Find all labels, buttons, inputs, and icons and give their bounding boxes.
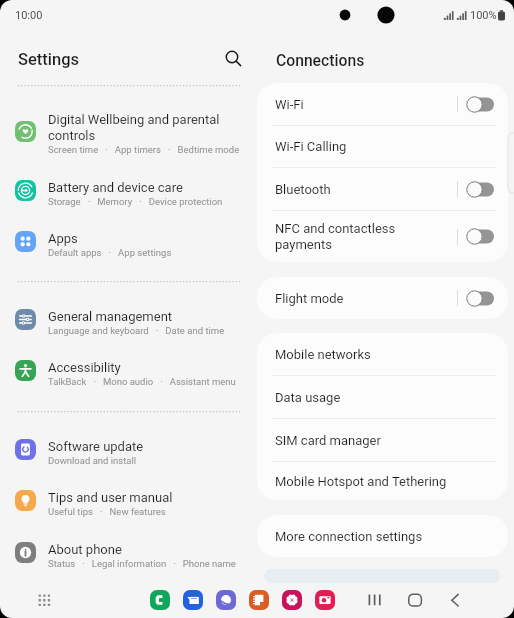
staticText: Mobile Hotspot and Tethering	[275, 474, 447, 489]
button[interactable]: Battery and device care	[0, 172, 250, 218]
button[interactable]: Software update	[0, 431, 250, 477]
button[interactable]: Mobile Hotspot and Tethering	[257, 462, 508, 500]
button[interactable]: NFC and contactless payments switch	[466, 228, 494, 245]
staticText: 10:00	[15, 9, 43, 22]
staticText: Wi-Fi Calling	[275, 139, 347, 154]
button[interactable]: Digital Wellbeing and parental controls	[0, 104, 250, 162]
staticText: Apps	[48, 231, 78, 246]
button[interactable]: Tips and user manual	[0, 482, 250, 528]
staticText: SIM card manager	[275, 433, 381, 448]
staticText: Connections	[276, 51, 365, 69]
staticText: NFC and contactless payments	[275, 221, 457, 252]
button[interactable]: Accessibility	[0, 352, 250, 398]
button[interactable]: SIM card manager	[257, 419, 508, 461]
staticText: Storage · Memory · Device protection	[48, 196, 223, 207]
staticText: Flight mode	[275, 291, 457, 306]
staticText: Digital Wellbeing and parental controls	[48, 112, 220, 143]
staticText: 100%	[470, 9, 497, 22]
button[interactable]: Recents	[363, 589, 385, 611]
button[interactable]: Flight mode switch	[466, 290, 494, 307]
button[interactable]: App 6	[315, 590, 335, 610]
button[interactable]: General management	[0, 301, 250, 347]
button[interactable]: Settings	[18, 50, 80, 69]
staticText: Battery and device care	[48, 180, 183, 195]
button[interactable]: Home	[404, 589, 426, 611]
staticText: Status · Legal information · Phone name	[48, 558, 236, 569]
button[interactable]: Bluetooth switch	[466, 181, 494, 198]
button[interactable]: Wi-Fi Calling	[257, 126, 508, 167]
staticText: TalkBack · Mono audio · Assistant menu	[48, 376, 236, 387]
staticText: Data usage	[275, 390, 341, 405]
button[interactable]: Mobile networks	[257, 333, 508, 375]
staticText: About phone	[48, 542, 122, 557]
button[interactable]: Flight mode	[257, 277, 508, 319]
button[interactable]: Apps	[0, 223, 250, 269]
staticText: Tips and user manual	[48, 490, 173, 505]
button[interactable]: All apps	[33, 590, 53, 610]
button[interactable]: NFC and contactless payments	[257, 211, 508, 262]
staticText: Mobile networks	[275, 347, 371, 362]
button[interactable]: Data usage	[257, 376, 508, 418]
staticText: Useful tips · New features	[48, 506, 166, 517]
button[interactable]: App 4	[249, 590, 269, 610]
button[interactable]: Back	[444, 589, 466, 611]
staticText: Language and keyboard · Date and time	[48, 325, 225, 336]
button[interactable]: App 5	[282, 590, 302, 610]
button[interactable]: Search	[218, 43, 246, 71]
staticText: Wi-Fi	[275, 97, 457, 112]
staticText: Bluetooth	[275, 182, 457, 197]
button[interactable]: App 2	[183, 590, 203, 610]
button[interactable]: App 1	[150, 590, 170, 610]
staticText: Software update	[48, 439, 144, 454]
staticText: Default apps · App settings	[48, 247, 172, 258]
staticText: Settings	[18, 50, 80, 69]
button[interactable]: Wi-Fi	[257, 83, 508, 125]
staticText: Screen time · App timers · Bedtime mode	[48, 144, 240, 155]
button[interactable]: Wi-Fi switch	[466, 96, 494, 113]
button[interactable]: App 3	[216, 590, 236, 610]
staticText: General management	[48, 309, 173, 324]
staticText: More connection settings	[275, 529, 423, 544]
staticText: Accessibility	[48, 360, 121, 375]
button[interactable]: More connection settings	[257, 515, 508, 557]
button[interactable]: Bluetooth	[257, 168, 508, 210]
staticText: Download and install	[48, 455, 137, 466]
button[interactable]: About phone	[0, 534, 250, 580]
